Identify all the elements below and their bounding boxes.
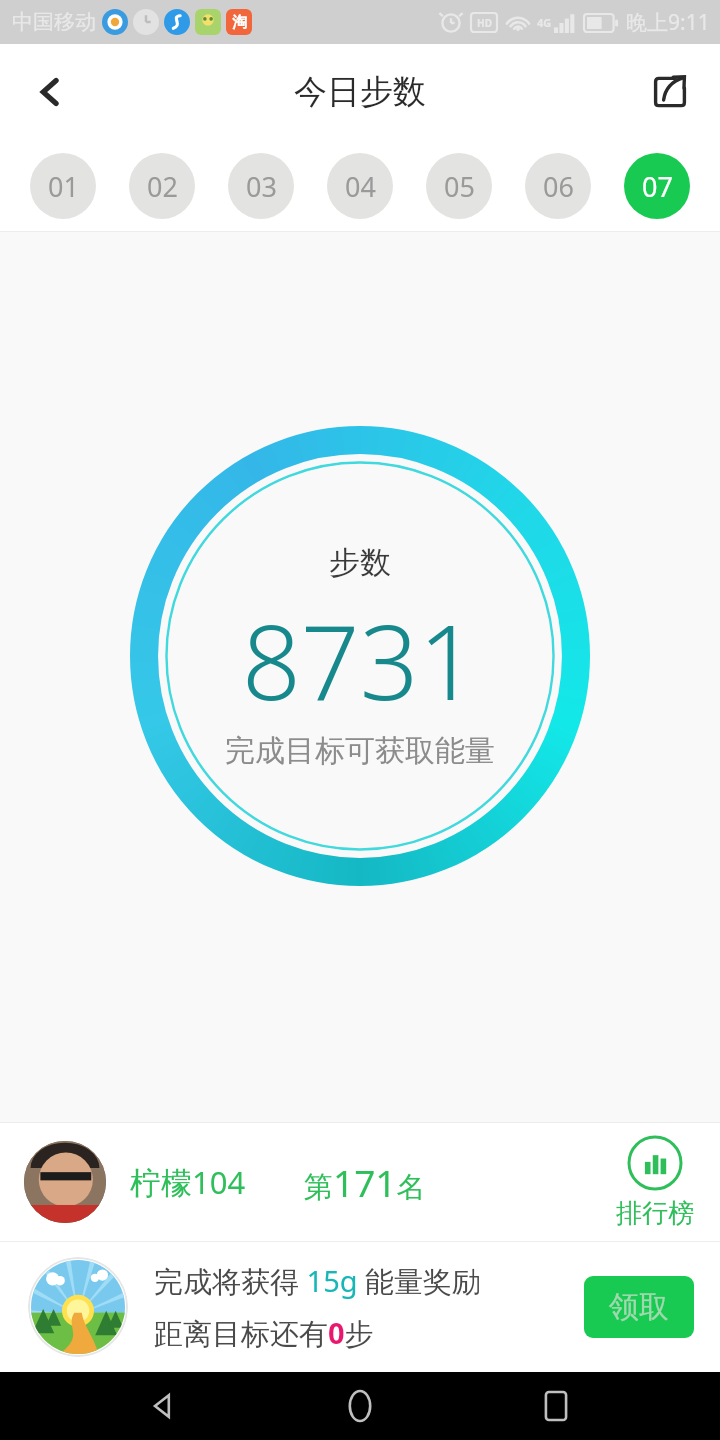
- staticText: 06: [543, 168, 574, 205]
- staticText: 今日步数: [294, 71, 426, 113]
- button[interactable]: 领取: [584, 1276, 694, 1338]
- staticText: 07: [642, 168, 673, 205]
- button[interactable]: Home: [328, 1374, 392, 1438]
- staticText: 02: [147, 168, 178, 205]
- staticText: 8731: [242, 590, 478, 730]
- button[interactable]: 柠檬104: [0, 1123, 720, 1241]
- staticText: 晚上9:11: [626, 8, 710, 37]
- staticText: 淘: [232, 13, 247, 32]
- button[interactable]: 03: [228, 153, 294, 219]
- button[interactable]: 02: [129, 153, 195, 219]
- staticText: 中国移动: [12, 9, 96, 35]
- staticText: 柠檬104: [130, 1161, 246, 1203]
- button[interactable]: 04: [327, 153, 393, 219]
- staticText: 领取: [609, 1288, 669, 1326]
- button[interactable]: Back: [18, 60, 82, 124]
- staticText: 距离目标还有0步: [154, 1313, 374, 1353]
- staticText: 完成目标可获取能量: [225, 732, 495, 770]
- staticText: 04: [345, 168, 376, 205]
- button[interactable]: Back: [132, 1374, 196, 1438]
- button[interactable]: 06: [525, 153, 591, 219]
- staticText: 01: [48, 168, 79, 205]
- button[interactable]: Share: [638, 60, 702, 124]
- button[interactable]: Recents: [524, 1374, 588, 1438]
- staticText: 完成将获得 15g 能量奖励: [154, 1261, 482, 1301]
- button[interactable]: 01: [30, 153, 96, 219]
- staticText: 05: [444, 168, 475, 205]
- staticText: 03: [246, 168, 277, 205]
- button[interactable]: 07: [624, 153, 690, 219]
- staticText: 步数: [329, 543, 391, 582]
- staticText: HD: [477, 16, 492, 30]
- button[interactable]: 排行榜: [616, 1135, 694, 1230]
- staticText: 排行榜: [616, 1197, 694, 1230]
- button[interactable]: 05: [426, 153, 492, 219]
- staticText: 第171名: [304, 1157, 426, 1207]
- staticText: 4G: [537, 15, 552, 30]
